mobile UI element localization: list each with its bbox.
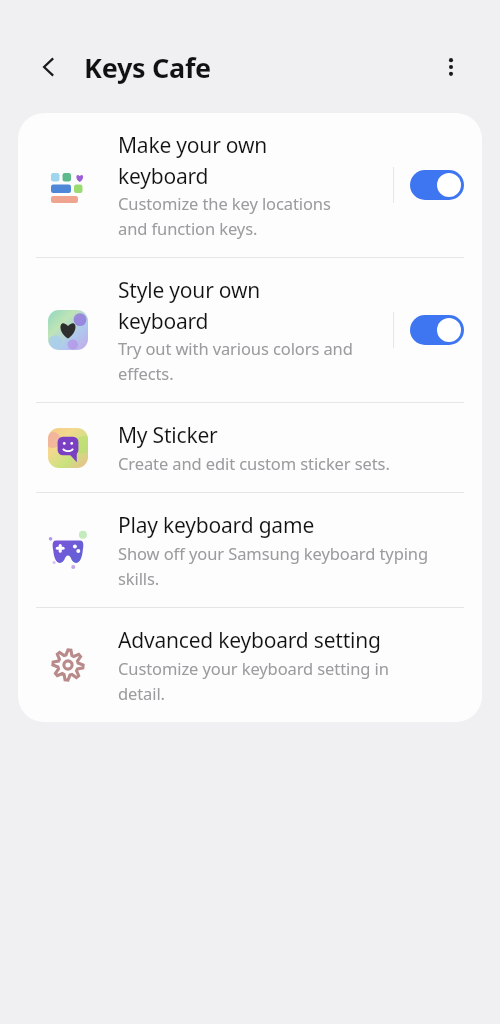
button[interactable]: More options <box>428 44 474 90</box>
staticText: Try out with various colors and effects. <box>118 337 353 384</box>
staticText: My Sticker <box>118 421 218 450</box>
button[interactable]: Toggle <box>410 315 464 345</box>
button[interactable]: Style your own keyboard <box>18 258 482 402</box>
staticText: Keys Cafe <box>84 49 211 86</box>
button[interactable]: Back <box>26 44 72 90</box>
staticText: Customize your keyboard setting in detai… <box>118 657 389 704</box>
staticText: Play keyboard game <box>118 511 315 540</box>
button[interactable]: My Sticker <box>18 403 482 492</box>
staticText: Show off your Samsung keyboard typing sk… <box>118 542 428 589</box>
button[interactable]: Toggle <box>410 170 464 200</box>
button[interactable]: Play keyboard game <box>18 493 482 607</box>
button[interactable]: Make your own keyboard <box>18 113 482 257</box>
staticText: Create and edit custom sticker sets. <box>118 452 390 474</box>
staticText: Customize the key locations and function… <box>118 192 331 239</box>
button[interactable]: Advanced keyboard setting <box>18 608 482 722</box>
staticText: Advanced keyboard setting <box>118 626 381 655</box>
staticText: Make your own keyboard <box>118 131 268 190</box>
staticText: Style your own keyboard <box>118 276 261 335</box>
